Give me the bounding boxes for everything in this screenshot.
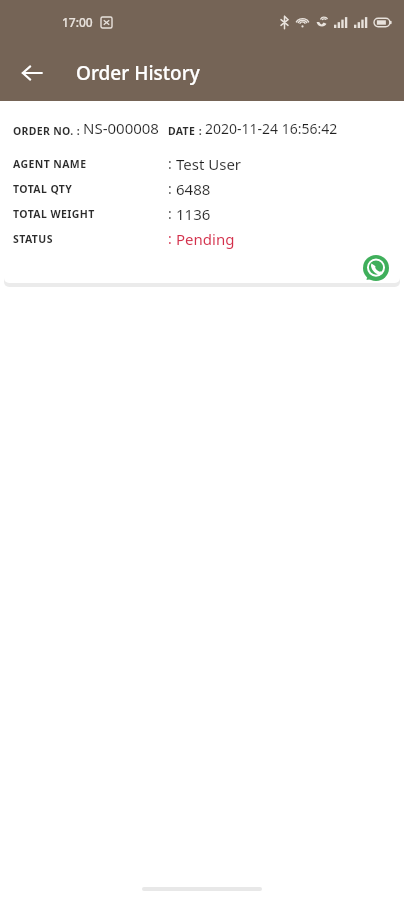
- staticText: 17:00: [62, 14, 93, 30]
- staticText: :: [168, 154, 172, 173]
- staticText: ORDER NO.: [13, 124, 74, 138]
- staticText: AGENT NAME: [13, 157, 168, 171]
- button[interactable]: Share on WhatsApp: [361, 253, 391, 283]
- staticText: Order History: [76, 60, 200, 86]
- staticText: TOTAL QTY: [13, 182, 168, 196]
- staticText: :: [168, 179, 172, 198]
- button[interactable]: ORDER NO.: [4, 105, 400, 283]
- staticText: :: [196, 124, 205, 138]
- staticText: NS-000008: [83, 118, 159, 138]
- staticText: :: [168, 229, 172, 248]
- staticText: Pending: [176, 229, 235, 249]
- staticText: 1136: [176, 204, 211, 224]
- staticText: 2020-11-24 16:56:42: [205, 119, 338, 138]
- staticText: Test User: [176, 154, 242, 174]
- staticText: DATE: [168, 124, 196, 138]
- button[interactable]: Back: [10, 51, 54, 95]
- staticText: STATUS: [13, 232, 168, 246]
- staticText: :: [168, 204, 172, 223]
- staticText: 6488: [176, 179, 211, 199]
- staticText: :: [74, 124, 83, 138]
- staticText: TOTAL WEIGHT: [13, 207, 168, 221]
